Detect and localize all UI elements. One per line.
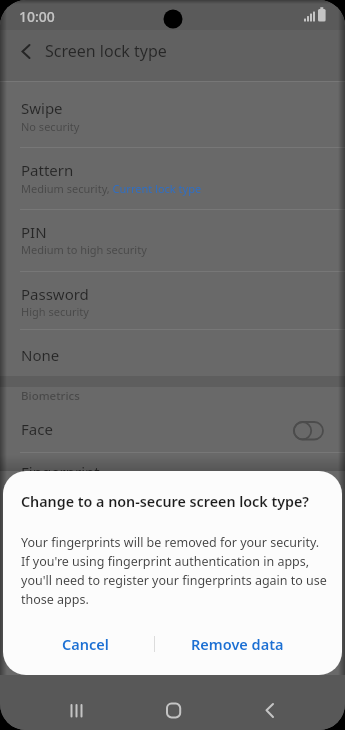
staticText: Change to a non-secure screen lock type? [21, 492, 309, 511]
button[interactable] [0, 209, 345, 271]
button[interactable]: Cancel [23, 626, 148, 662]
staticText: Your fingerprints will be removed for yo… [21, 534, 327, 608]
button[interactable] [288, 416, 328, 444]
staticText: 10:00 [19, 7, 55, 26]
staticText: Medium security, Current lock type [21, 181, 202, 196]
staticText: Cancel [62, 634, 109, 654]
staticText: Biometrics [21, 388, 80, 404]
button[interactable]: Remove data [175, 626, 300, 662]
staticText: Swipe [21, 98, 63, 118]
staticText: High security [21, 304, 89, 319]
button[interactable] [56, 690, 96, 730]
button[interactable] [10, 38, 40, 66]
staticText: Face [21, 419, 53, 439]
button[interactable] [0, 82, 345, 147]
staticText: Pattern [21, 160, 74, 180]
button[interactable] [0, 271, 345, 329]
button[interactable] [0, 329, 345, 376]
button[interactable] [153, 690, 193, 730]
staticText: None [21, 345, 60, 365]
button[interactable] [0, 407, 345, 452]
button[interactable] [0, 147, 345, 209]
staticText: Medium to high security [21, 242, 147, 257]
staticText: PIN [21, 222, 47, 242]
button[interactable] [0, 452, 345, 471]
button[interactable] [250, 690, 290, 730]
staticText: No security [21, 119, 80, 134]
staticText: Screen lock type [45, 40, 167, 62]
staticText: Password [21, 284, 89, 304]
staticText: Fingerprint [21, 462, 100, 482]
staticText: Remove data [191, 634, 284, 654]
